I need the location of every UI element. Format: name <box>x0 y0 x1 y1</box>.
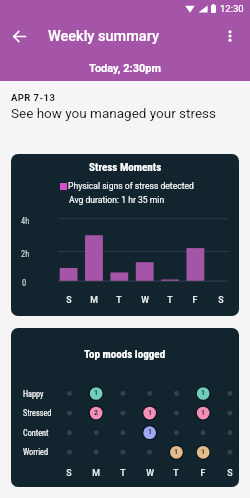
staticText: Top moods logged <box>84 348 166 361</box>
staticText: 2h <box>21 249 30 259</box>
staticText: 2 <box>89 408 103 417</box>
staticText: 12:30 <box>220 3 244 14</box>
staticText: 1 <box>89 388 103 397</box>
staticText: Avg duration: 1 hr 35 min <box>69 195 165 205</box>
staticText: Content <box>23 428 49 438</box>
staticText: S <box>62 295 76 305</box>
staticText: T <box>112 295 126 305</box>
staticText: W <box>143 468 157 478</box>
staticText: Happy <box>23 389 44 399</box>
staticText: S <box>223 468 237 478</box>
staticText: 4h <box>21 216 30 226</box>
staticText: Stress Moments <box>89 161 162 174</box>
button[interactable]: Stress Moments <box>11 154 239 316</box>
button[interactable]: Today, 2:30pm <box>0 56 250 81</box>
staticText: APR 7-13 <box>11 92 56 103</box>
button[interactable]: Back <box>8 25 31 48</box>
staticText: See how you managed your stress <box>11 105 217 121</box>
staticText: S <box>62 468 76 478</box>
button[interactable]: More options <box>218 24 242 48</box>
staticText: 0 <box>22 278 27 288</box>
staticText: F <box>188 295 202 305</box>
staticText: F <box>196 468 210 478</box>
staticText: Weekly summary <box>48 28 160 45</box>
button[interactable]: Top moods logged <box>11 328 239 487</box>
staticText: T <box>169 468 183 478</box>
staticText: Physical signs of stress detected <box>68 181 194 191</box>
staticText: 1 <box>196 408 210 417</box>
staticText: T <box>116 468 130 478</box>
staticText: 1 <box>196 447 210 456</box>
staticText: T <box>163 295 177 305</box>
staticText: W <box>138 295 152 305</box>
staticText: 1 <box>169 447 183 456</box>
staticText: Worried <box>23 447 48 457</box>
staticText: 1 <box>143 408 157 417</box>
staticText: 1 <box>196 388 210 397</box>
staticText: Stressed <box>23 408 52 418</box>
staticText: S <box>214 295 228 305</box>
staticText: Today, 2:30pm <box>89 62 162 75</box>
staticText: M <box>89 468 103 478</box>
staticText: M <box>87 295 101 305</box>
staticText: 1 <box>143 427 157 436</box>
